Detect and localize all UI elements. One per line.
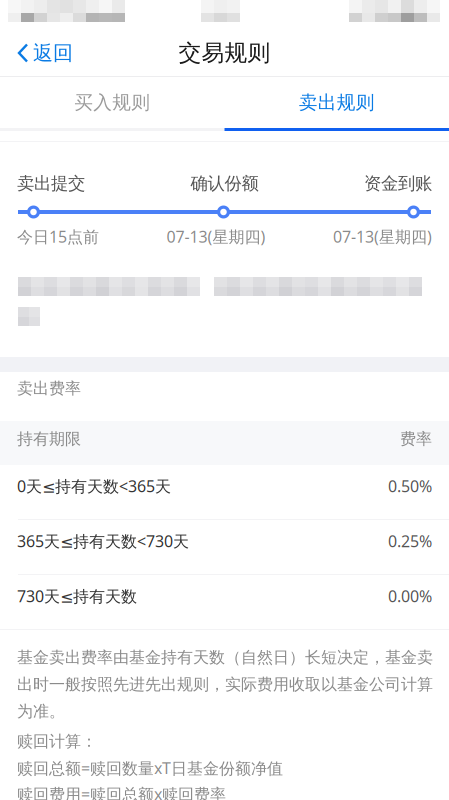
staticText: 交易规则 [178,39,270,67]
staticText: 07-13(星期四) [333,226,432,247]
button[interactable]: 买入规则 [0,77,224,128]
button[interactable]: 返回 [0,30,100,76]
staticText: 赎回总额=赎回数量xT日基金份额净值 [17,757,283,779]
staticText: 730天≤持有天数 [17,585,137,607]
staticText: 赎回计算： [17,732,97,751]
staticText: 出时一般按照先进先出规则，实际费用收取以基金公司计算 [17,675,433,694]
button[interactable]: 365天≤持有天数<730天 [0,520,449,574]
button[interactable]: 卖出规则 [224,77,449,128]
staticText: 卖出提交 [17,173,85,194]
button[interactable]: 730天≤持有天数 [0,575,449,629]
staticText: 365天≤持有天数<730天 [17,530,189,552]
staticText: 0.25% [388,530,432,552]
staticText: 0.50% [388,475,432,497]
staticText: 07-13(星期四) [166,226,265,247]
staticText: 为准。 [17,702,65,721]
staticText: 0天≤持有天数<365天 [17,475,171,497]
staticText: 今日15点前 [17,226,99,247]
staticText: 卖出费率 [17,379,81,398]
staticText: 赎回费用=赎回总额x赎回费率 [17,783,226,800]
staticText: 确认份额 [190,173,258,194]
staticText: 持有期限 [17,429,81,449]
staticText: 0.00% [388,585,432,607]
staticText: 费率 [400,429,432,449]
button[interactable]: 0天≤持有天数<365天 [0,465,449,519]
staticText: 卖出规则 [299,91,375,114]
staticText: 买入规则 [74,91,150,114]
staticText: 资金到账 [364,173,432,194]
staticText: 基金卖出费率由基金持有天数（自然日）长短决定，基金卖 [17,648,433,667]
staticText: 返回 [33,41,73,65]
